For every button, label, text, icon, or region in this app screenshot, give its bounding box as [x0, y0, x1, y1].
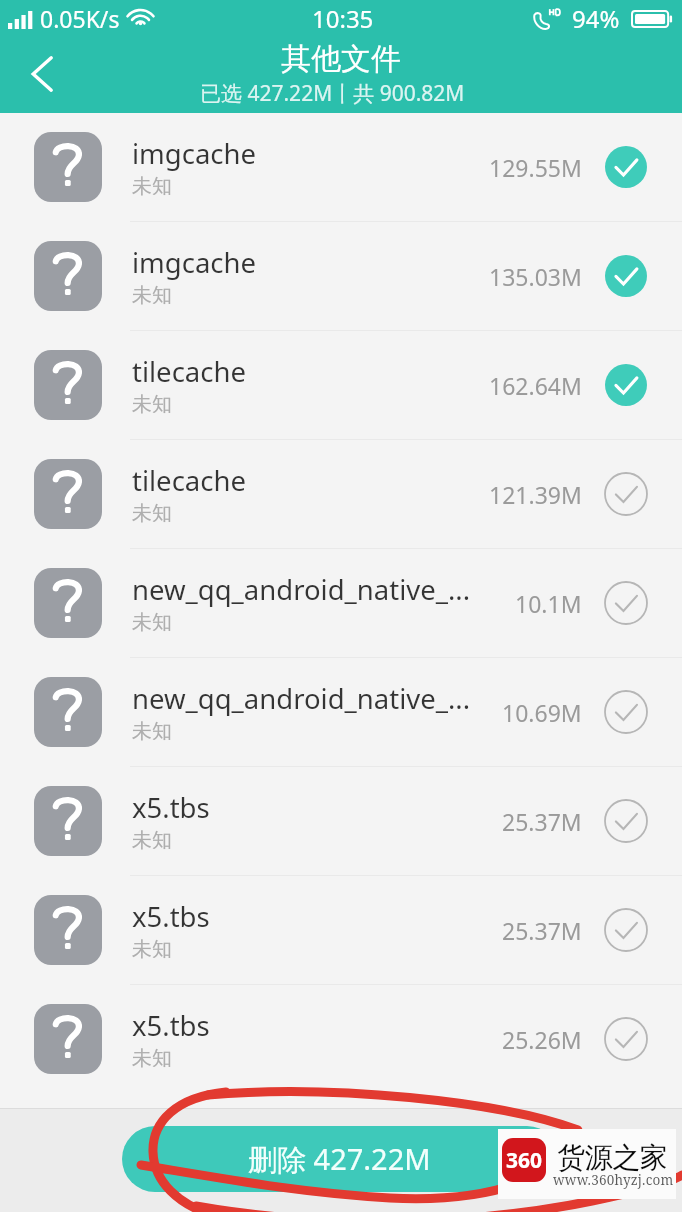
staticText: 未知: [132, 1046, 172, 1071]
button[interactable]: Not selected: [604, 908, 648, 952]
staticText: 129.55M: [489, 152, 582, 183]
button[interactable]: Not selected: [604, 472, 648, 516]
button[interactable]: Not selected: [604, 799, 648, 843]
staticText: 删除 427.22M: [248, 1139, 431, 1179]
staticText: x5.tbs: [132, 1007, 210, 1044]
button[interactable]: x5.tbs: [0, 876, 682, 984]
staticText: 其他文件: [281, 40, 401, 78]
staticText: 135.03M: [489, 261, 582, 292]
staticText: 未知: [132, 610, 172, 635]
button[interactable]: x5.tbs: [0, 985, 682, 1093]
staticText: new_qq_android_native_...: [132, 571, 471, 608]
button[interactable]: tilecache: [0, 440, 682, 548]
button[interactable]: Selected: [604, 363, 648, 407]
staticText: 162.64M: [489, 370, 582, 401]
button[interactable]: imgcache: [0, 113, 682, 221]
staticText: 10.1M: [515, 588, 582, 619]
button[interactable]: Back: [10, 42, 74, 106]
button[interactable]: new_qq_android_native_...: [0, 658, 682, 766]
staticText: 10.69M: [502, 697, 582, 728]
staticText: 121.39M: [489, 479, 582, 510]
staticText: 未知: [132, 174, 172, 199]
staticText: 25.26M: [502, 1024, 582, 1055]
staticText: imgcache: [132, 244, 257, 281]
button[interactable]: imgcache: [0, 222, 682, 330]
staticText: 未知: [132, 719, 172, 744]
button[interactable]: new_qq_android_native_...: [0, 549, 682, 657]
button[interactable]: Not selected: [604, 1017, 648, 1061]
button[interactable]: Selected: [604, 254, 648, 298]
button[interactable]: 删除 427.22M: [122, 1126, 560, 1192]
staticText: 未知: [132, 937, 172, 962]
button[interactable]: tilecache: [0, 331, 682, 439]
staticText: new_qq_android_native_...: [132, 680, 471, 717]
staticText: 已选 427.22M丨共 900.82M: [200, 79, 465, 108]
staticText: 25.37M: [502, 806, 582, 837]
staticText: 94%: [572, 2, 620, 35]
staticText: tilecache: [132, 353, 246, 390]
staticText: 货源之家: [557, 1140, 668, 1175]
staticText: 360: [506, 1146, 543, 1175]
button[interactable]: Selected: [604, 145, 648, 189]
staticText: 0.05K/s: [40, 3, 120, 34]
button[interactable]: Not selected: [604, 690, 648, 734]
staticText: 未知: [132, 283, 172, 308]
staticText: www.360hyzj.com: [553, 1171, 674, 1189]
staticText: imgcache: [132, 135, 257, 172]
staticText: tilecache: [132, 462, 246, 499]
staticText: x5.tbs: [132, 789, 210, 826]
staticText: 未知: [132, 501, 172, 526]
staticText: 25.37M: [502, 915, 582, 946]
staticText: 未知: [132, 828, 172, 853]
button[interactable]: x5.tbs: [0, 767, 682, 875]
staticText: x5.tbs: [132, 898, 210, 935]
staticText: 未知: [132, 392, 172, 417]
staticText: 10:35: [312, 2, 374, 35]
button[interactable]: Not selected: [604, 581, 648, 625]
